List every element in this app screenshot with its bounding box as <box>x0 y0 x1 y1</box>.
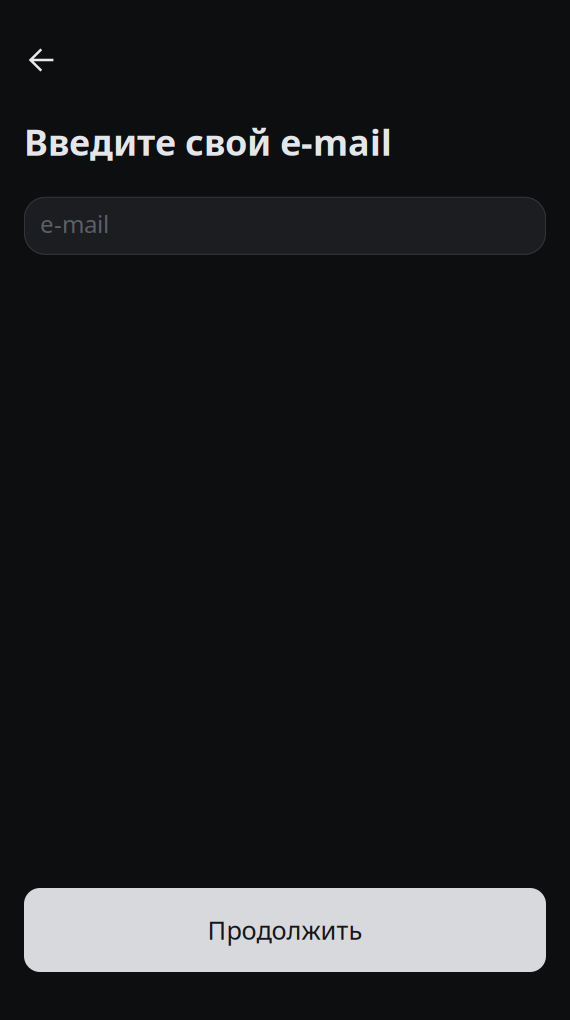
button[interactable]: e-mail <box>24 197 546 255</box>
button[interactable]: Back <box>29 38 73 82</box>
button[interactable]: Продолжить <box>24 888 546 972</box>
staticText: e-mail <box>40 208 109 240</box>
staticText: Продолжить <box>207 913 362 947</box>
staticText: Введите свой e-mail <box>24 118 392 166</box>
